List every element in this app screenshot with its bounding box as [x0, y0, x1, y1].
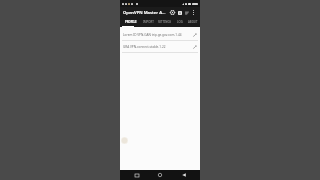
button[interactable]: More options: [190, 7, 197, 18]
button[interactable]: Sort: [183, 7, 190, 18]
button[interactable]: ABOUT: [185, 18, 200, 26]
button[interactable]: Recent apps: [130, 170, 144, 180]
staticText: Lorem ID VPN-GAN trip.ge.gov.com-1.44: [123, 33, 189, 37]
button[interactable]: Home: [153, 170, 167, 180]
staticText: PROFILE: [125, 20, 137, 24]
staticText: GRA VPN-connect-stable-1.22: [123, 45, 189, 49]
button[interactable]: Edit profile: [191, 31, 198, 38]
button[interactable]: IMPORT: [140, 18, 156, 26]
button[interactable]: Info: [176, 7, 183, 18]
staticText: OpenVPN Master App...: [123, 10, 168, 16]
button[interactable]: Edit profile: [191, 43, 198, 50]
staticText: SETTINGS: [158, 20, 172, 24]
button[interactable]: PROFILE: [122, 18, 140, 26]
button[interactable]: GRA VPN-connect-stable-1.22: [120, 41, 200, 52]
button[interactable]: Help: [169, 7, 176, 18]
staticText: ABOUT: [188, 20, 198, 24]
button[interactable]: SETTINGS: [156, 18, 174, 26]
staticText: LOG: [177, 20, 183, 24]
staticText: IMPORT: [143, 20, 154, 24]
button[interactable]: Back: [177, 170, 191, 180]
button[interactable]: Lorem ID VPN-GAN trip.ge.gov.com-1.44: [120, 29, 200, 40]
button[interactable]: LOG: [174, 18, 185, 26]
